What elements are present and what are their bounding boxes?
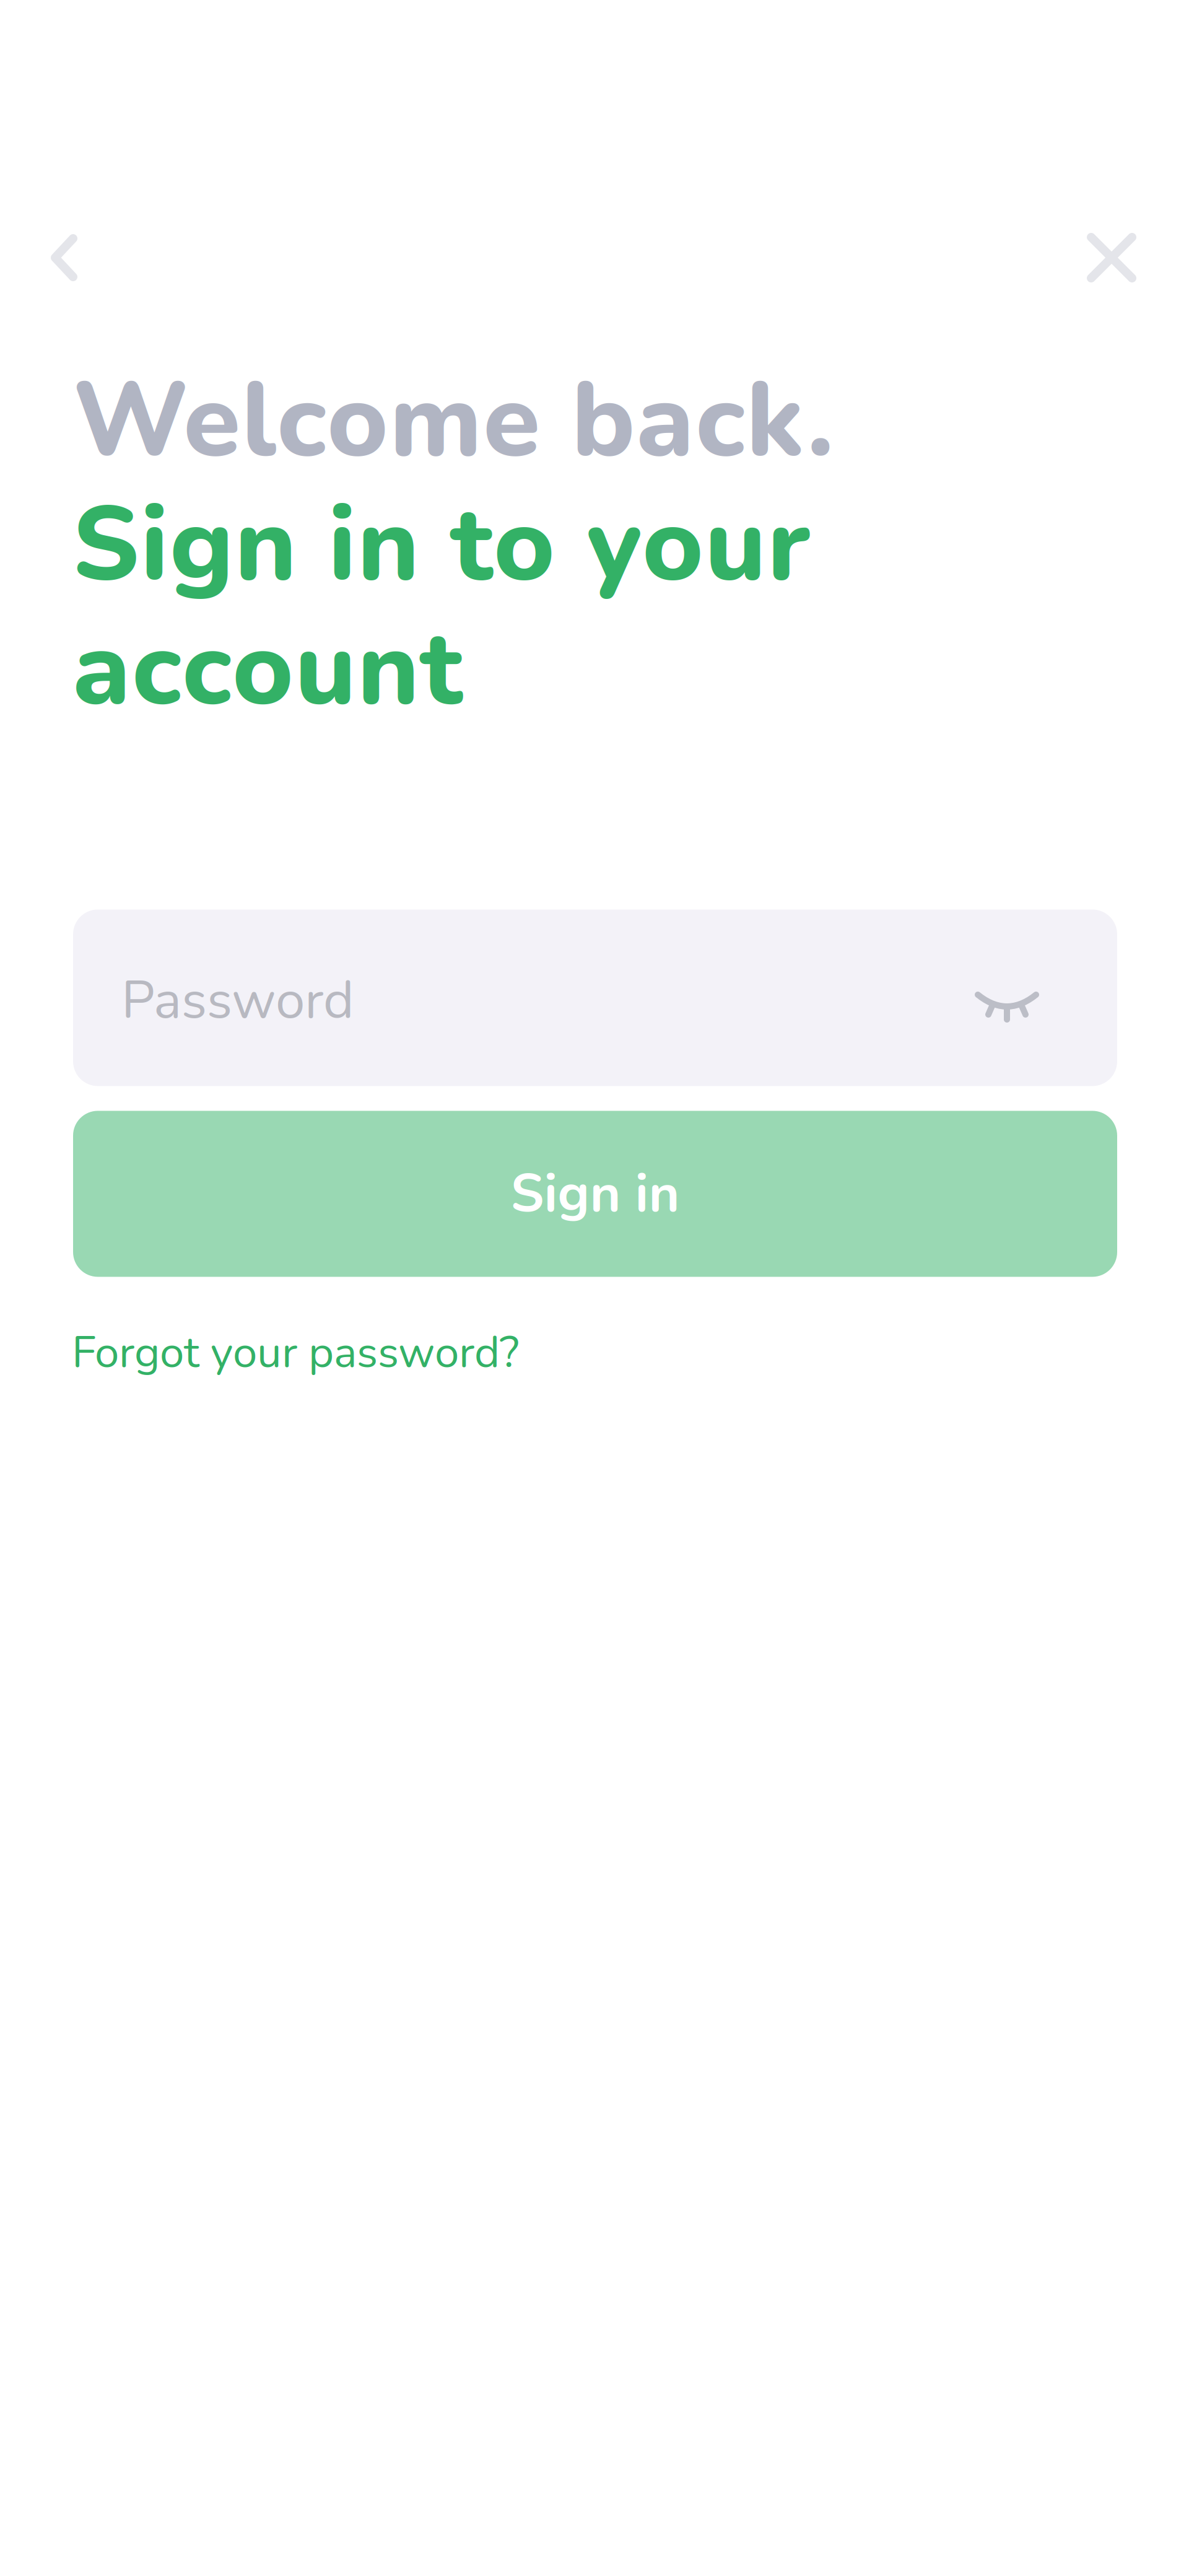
button[interactable]: Sign in — [73, 1111, 1117, 1277]
staticText: Password — [121, 964, 354, 1036]
staticText: Sign in to your — [72, 474, 810, 616]
staticText: Sign in — [511, 1158, 680, 1230]
button[interactable]: Show password — [973, 980, 1040, 1015]
staticText: Welcome back. — [72, 350, 834, 492]
staticText: Forgot your password? — [72, 1323, 519, 1382]
button[interactable]: Close — [1086, 232, 1137, 283]
button[interactable]: Back — [50, 234, 78, 282]
staticText: account — [72, 598, 463, 740]
button[interactable]: Forgot your password? — [72, 1323, 519, 1382]
